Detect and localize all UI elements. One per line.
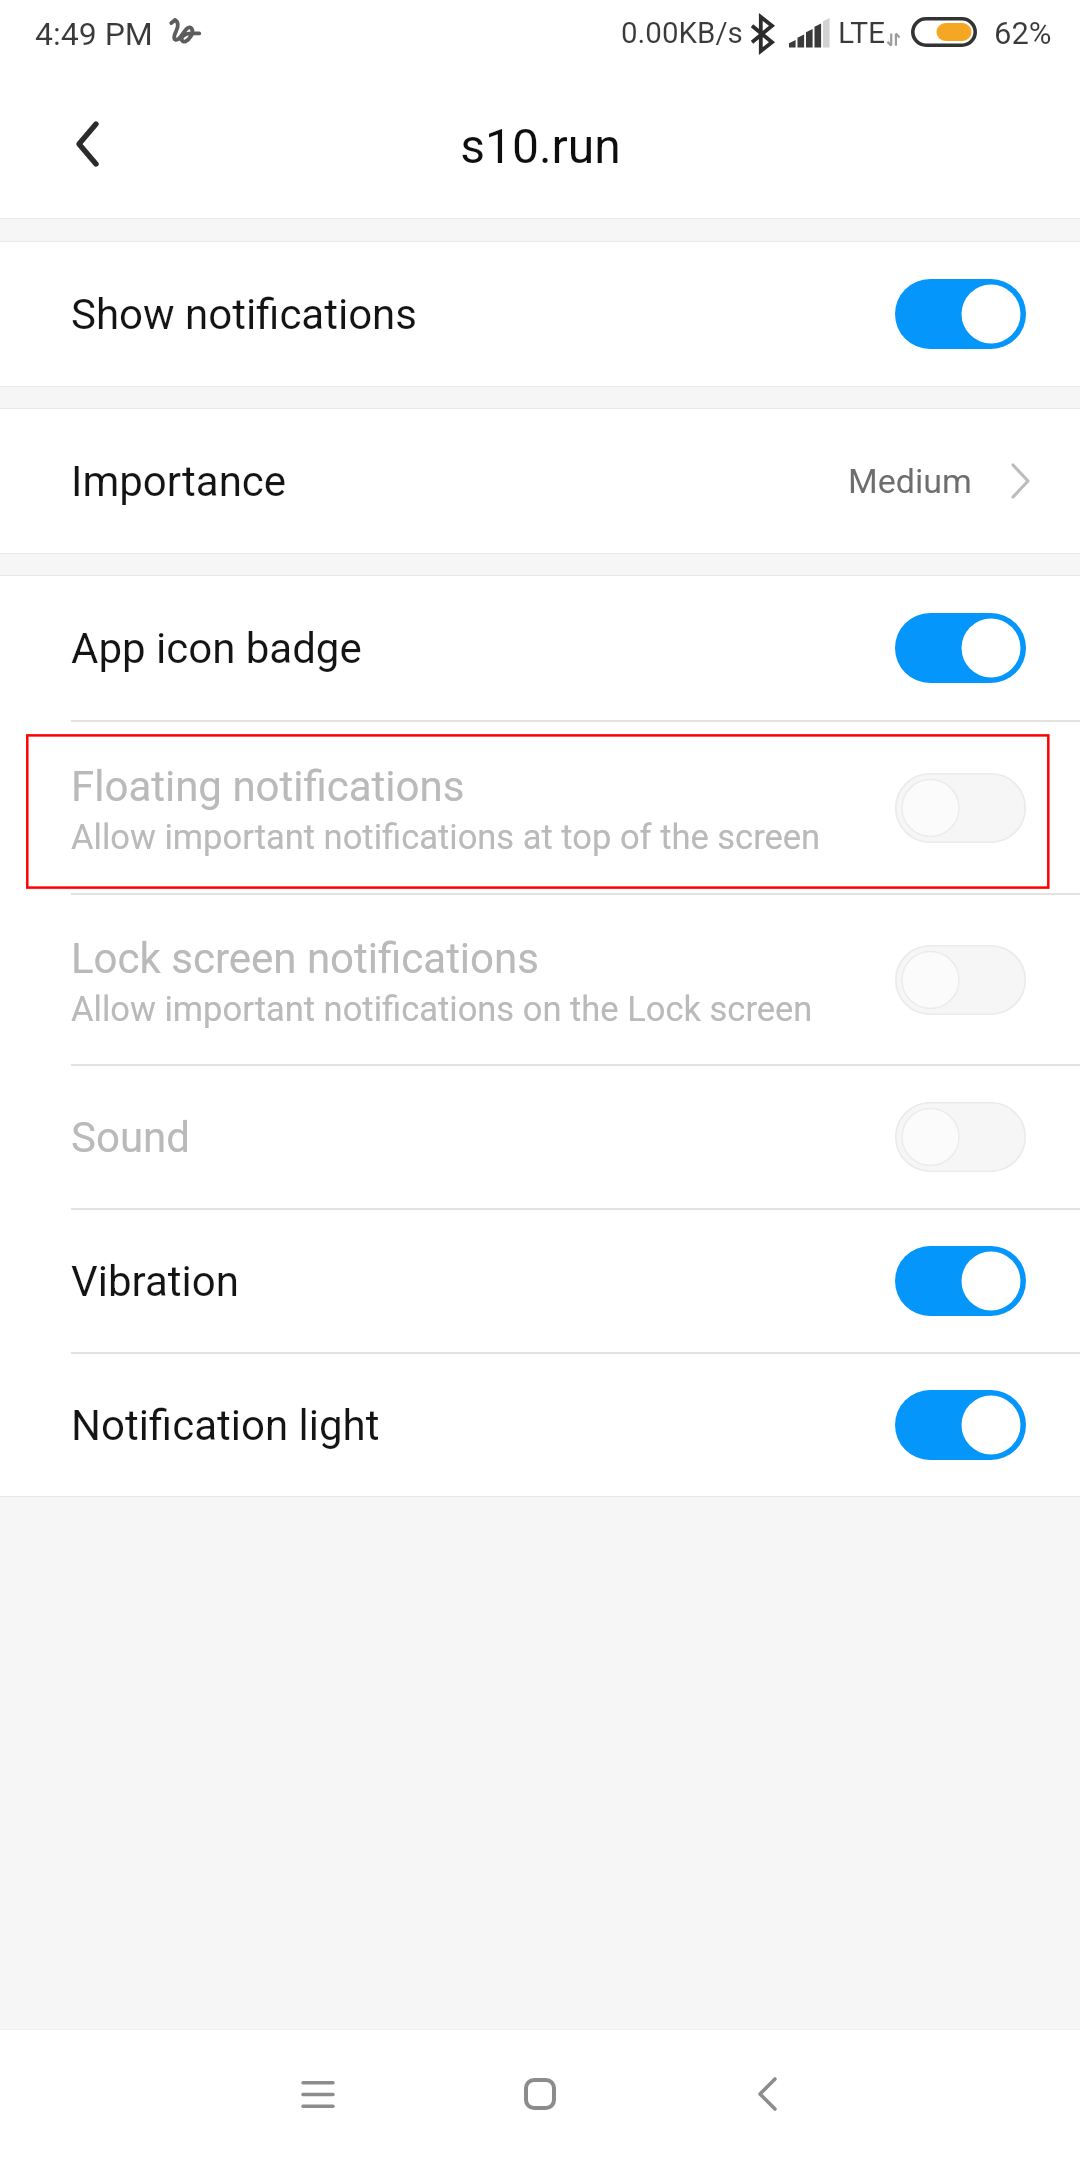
staticText: LTE	[838, 15, 886, 50]
button[interactable]: App icon badge	[0, 576, 1080, 720]
button[interactable]: Recents	[258, 2039, 378, 2149]
staticText: 0.00KB/s	[621, 16, 743, 51]
staticText: 4:49 PM	[35, 15, 153, 53]
button[interactable]: Importance	[0, 409, 1080, 553]
staticText: Medium	[848, 461, 972, 501]
staticText: Sound	[71, 1113, 190, 1162]
staticText: 62%	[994, 15, 1052, 51]
staticText: Floating notifications	[71, 762, 465, 811]
button[interactable]: Vibration	[0, 1210, 1080, 1352]
staticText: Allow important notifications on the Loc…	[71, 989, 813, 1029]
button[interactable]: Back	[0, 80, 150, 218]
staticText: s10.run	[460, 118, 621, 174]
button[interactable]: Floating notifications	[0, 722, 1080, 893]
button[interactable]: Sound	[0, 1066, 1080, 1208]
button[interactable]: Notification light	[0, 1354, 1080, 1496]
staticText: Vibration	[71, 1257, 239, 1306]
staticText: Importance	[71, 457, 287, 506]
button[interactable]: Show notifications	[0, 242, 1080, 386]
staticText: Allow important notifications at top of …	[71, 817, 821, 857]
staticText: App icon badge	[71, 624, 362, 673]
staticText: Show notifications	[71, 290, 417, 339]
staticText: Lock screen notifications	[71, 934, 539, 983]
staticText: Notification light	[71, 1401, 380, 1450]
button[interactable]: Lock screen notifications	[0, 895, 1080, 1064]
button[interactable]: Home	[480, 2039, 600, 2149]
button[interactable]: Back	[707, 2039, 827, 2149]
